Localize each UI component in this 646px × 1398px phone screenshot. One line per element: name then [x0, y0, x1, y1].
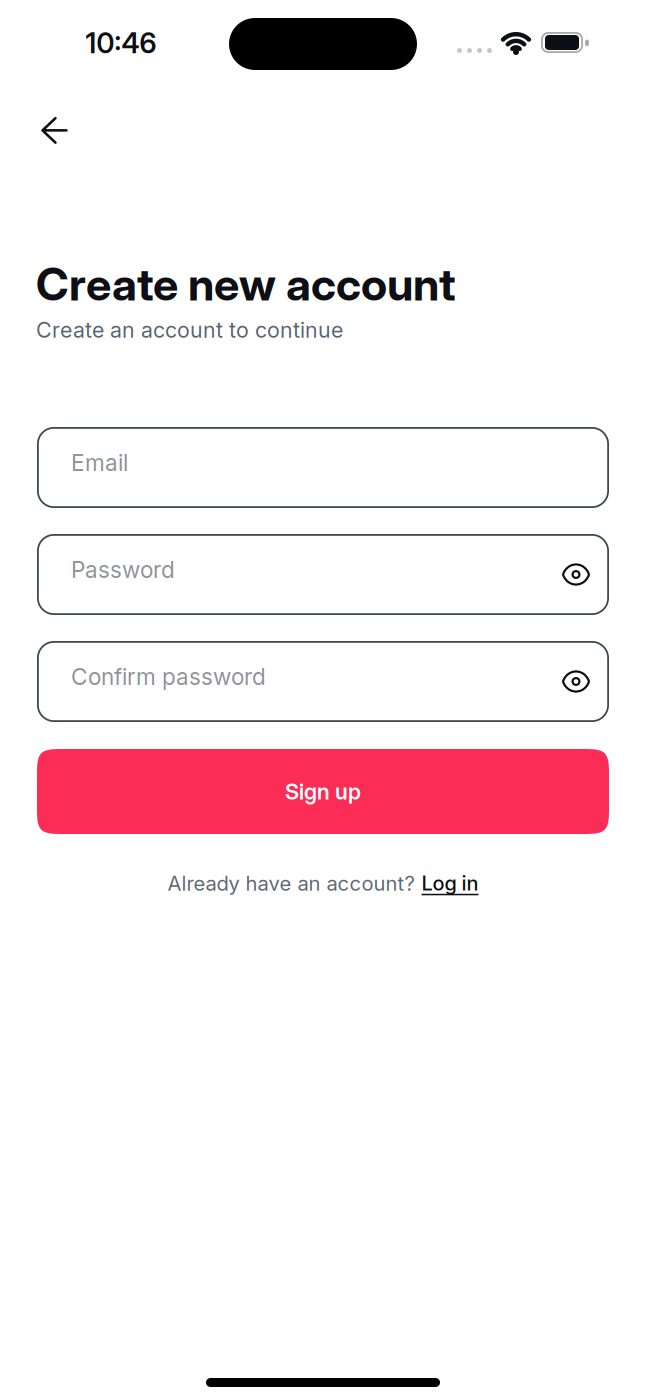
button[interactable]: Email [37, 427, 609, 508]
button[interactable]: Back [33, 109, 76, 152]
staticText: Sign up [285, 778, 361, 805]
staticText: 10:46 [85, 26, 156, 60]
staticText: Email [71, 449, 128, 476]
staticText: Create new account [36, 257, 456, 311]
staticText: Create an account to continue [36, 317, 343, 343]
button[interactable]: Confirm password [37, 641, 609, 722]
button[interactable]: Password [37, 534, 609, 615]
staticText: Password [71, 556, 175, 583]
button[interactable]: Show password [553, 554, 599, 594]
staticText: Log in [421, 871, 478, 895]
button[interactable]: Show password [553, 661, 599, 701]
staticText: Confirm password [71, 663, 266, 690]
button[interactable]: Log in [421, 871, 478, 895]
button[interactable]: Sign up [37, 749, 609, 834]
staticText: Already have an account? [167, 871, 414, 895]
